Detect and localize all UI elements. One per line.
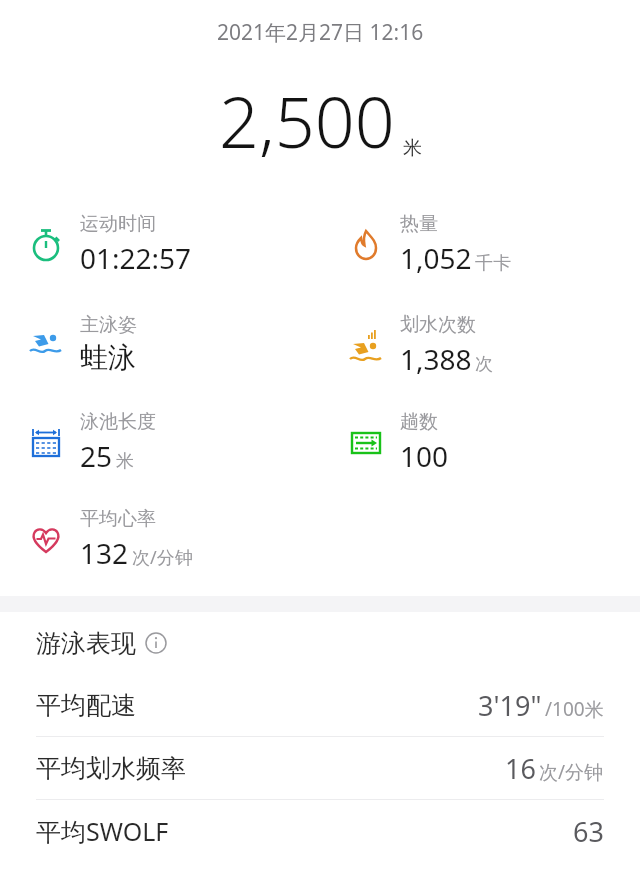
staticText: 米: [116, 450, 134, 473]
staticText: 划水次数: [400, 313, 476, 337]
staticText: 次/分钟: [539, 759, 604, 785]
staticText: 泳池长度: [80, 410, 156, 434]
staticText: 16: [505, 750, 536, 787]
button[interactable]: 平均心率: [26, 507, 320, 572]
button[interactable]: 热量: [346, 212, 640, 277]
staticText: 平均SWOLF: [36, 814, 169, 848]
button[interactable]: 趟数: [346, 410, 640, 475]
button[interactable]: 泳池长度: [26, 410, 320, 475]
staticText: 3'19": [478, 687, 542, 724]
button[interactable]: 平均配速: [36, 674, 604, 736]
staticText: 平均心率: [80, 507, 156, 531]
staticText: 1,388: [400, 340, 472, 378]
staticText: 游泳表现: [36, 628, 136, 659]
staticText: 01:22:57: [80, 239, 192, 277]
staticText: 运动时间: [80, 212, 156, 236]
staticText: 132: [80, 534, 129, 572]
button[interactable]: 平均SWOLF: [36, 800, 604, 862]
button[interactable]: 主泳姿: [26, 313, 320, 375]
staticText: 蛙泳: [80, 340, 136, 375]
staticText: /100米: [545, 696, 604, 722]
staticText: 2,500: [219, 73, 395, 168]
button[interactable]: 划水次数: [346, 313, 640, 378]
staticText: 热量: [400, 212, 438, 236]
staticText: 100: [400, 437, 449, 475]
staticText: 趟数: [400, 410, 438, 434]
staticText: 1,052: [400, 239, 472, 277]
staticText: 千卡: [475, 252, 511, 275]
staticText: 平均配速: [36, 690, 136, 721]
staticText: 次: [475, 353, 493, 376]
button[interactable]: Info: [145, 632, 167, 654]
staticText: 2021年2月27日 12:16: [217, 18, 424, 47]
staticText: 主泳姿: [80, 313, 137, 337]
button[interactable]: 运动时间: [26, 212, 320, 277]
staticText: 次/分钟: [132, 545, 193, 570]
button[interactable]: 平均划水频率: [36, 737, 604, 799]
staticText: 米: [403, 136, 422, 160]
staticText: 25: [80, 437, 113, 475]
staticText: 63: [573, 813, 604, 850]
staticText: 平均划水频率: [36, 753, 186, 784]
